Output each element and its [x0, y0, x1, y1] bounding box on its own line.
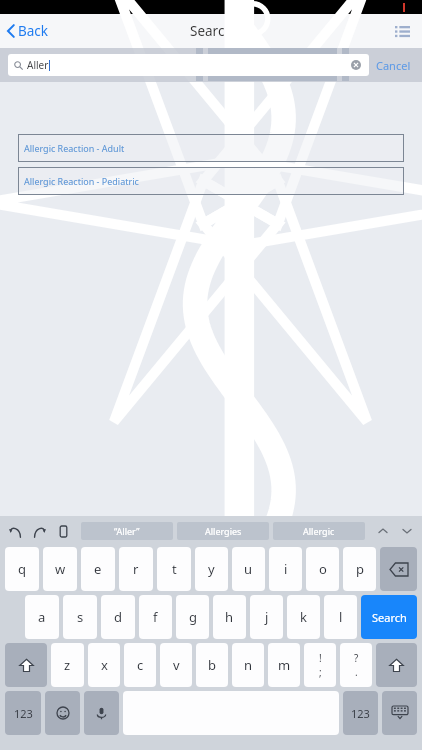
button[interactable]: Hide keyboard — [382, 691, 417, 735]
staticText: j — [265, 608, 269, 626]
button[interactable]: Next — [395, 519, 419, 543]
staticText: f — [153, 608, 158, 626]
button[interactable]: Numbers — [343, 691, 378, 735]
staticText: x — [101, 656, 108, 674]
staticText: . — [355, 665, 358, 679]
staticText: o — [319, 560, 327, 578]
button[interactable]: t — [157, 547, 191, 591]
button[interactable]: p — [343, 547, 376, 591]
button[interactable]: Redo — [27, 519, 51, 543]
staticText: z — [64, 656, 71, 674]
button[interactable]: b — [196, 643, 228, 687]
button[interactable]: o — [306, 547, 339, 591]
button[interactable]: “Aller” — [81, 522, 173, 540]
staticText: ! — [319, 651, 322, 665]
staticText: y — [208, 560, 215, 578]
staticText: l — [339, 608, 343, 626]
staticText: t — [172, 560, 177, 578]
button[interactable]: Clear text — [349, 58, 363, 72]
button[interactable]: ? — [340, 643, 372, 687]
staticText: q — [18, 560, 26, 578]
staticText: Back — [18, 22, 49, 40]
staticText: s — [77, 608, 84, 626]
button[interactable]: r — [119, 547, 153, 591]
staticText: Allergies — [205, 525, 242, 537]
button[interactable]: d — [101, 595, 135, 639]
button[interactable]: Shift — [376, 643, 417, 687]
staticText: w — [55, 560, 66, 578]
button[interactable]: Emoji — [45, 691, 80, 735]
staticText: Allergic Reaction - Pediatric — [24, 175, 139, 187]
button[interactable]: a — [25, 595, 59, 639]
button[interactable]: v — [160, 643, 192, 687]
button[interactable]: Dictation — [84, 691, 119, 735]
staticText: a — [38, 608, 46, 626]
button[interactable]: q — [5, 547, 39, 591]
button[interactable]: g — [176, 595, 209, 639]
button[interactable]: z — [51, 643, 84, 687]
staticText: u — [244, 560, 253, 578]
button[interactable]: Paste — [51, 519, 75, 543]
button[interactable]: Allergic — [273, 522, 365, 540]
staticText: v — [173, 656, 180, 674]
button[interactable]: n — [232, 643, 264, 687]
button[interactable]: Menu — [387, 16, 417, 46]
staticText: p — [356, 560, 364, 578]
button[interactable]: Numbers — [5, 691, 41, 735]
staticText: Allergic — [303, 525, 335, 537]
button[interactable]: Previous — [371, 519, 395, 543]
staticText: ? — [354, 651, 359, 665]
staticText: “Aller” — [114, 525, 140, 537]
button[interactable]: x — [88, 643, 120, 687]
button[interactable]: Cancel — [373, 53, 414, 78]
button[interactable]: j — [250, 595, 283, 639]
staticText: Aller — [27, 58, 49, 72]
staticText: Search — [190, 22, 233, 40]
button[interactable]: Back — [3, 17, 53, 45]
button[interactable]: w — [43, 547, 77, 591]
button[interactable]: Aller — [8, 54, 369, 76]
staticText: Search — [372, 610, 407, 625]
staticText: e — [94, 560, 102, 578]
button[interactable]: e — [81, 547, 115, 591]
button[interactable]: i — [269, 547, 302, 591]
button[interactable]: Shift — [5, 643, 47, 687]
button[interactable]: u — [232, 547, 265, 591]
button[interactable]: ! — [304, 643, 336, 687]
staticText: k — [300, 608, 307, 626]
button[interactable]: Allergic Reaction - Pediatric — [18, 167, 404, 195]
button[interactable]: k — [287, 595, 320, 639]
button[interactable]: Undo — [3, 519, 27, 543]
staticText: b — [208, 656, 216, 674]
staticText: c — [137, 656, 144, 674]
staticText: Allergic Reaction - Adult — [24, 142, 125, 154]
staticText: r — [133, 560, 139, 578]
staticText: 123 — [14, 706, 33, 721]
button[interactable]: f — [139, 595, 172, 639]
staticText: i — [284, 560, 288, 578]
staticText: h — [225, 608, 234, 626]
staticText: d — [114, 608, 122, 626]
staticText: ; — [319, 665, 322, 679]
staticText: Cancel — [376, 58, 411, 73]
staticText: g — [189, 608, 197, 626]
button[interactable]: s — [63, 595, 97, 639]
button[interactable]: Allergies — [177, 522, 269, 540]
button[interactable]: l — [324, 595, 357, 639]
staticText: m — [278, 656, 291, 674]
button[interactable]: Search — [361, 595, 417, 639]
staticText: 123 — [351, 706, 370, 721]
button[interactable]: h — [213, 595, 246, 639]
button[interactable]: m — [268, 643, 300, 687]
button[interactable]: Backspace — [380, 547, 417, 591]
button[interactable]: Allergic Reaction - Adult — [18, 134, 404, 162]
staticText: n — [244, 656, 253, 674]
button[interactable]: c — [124, 643, 156, 687]
button[interactable]: y — [195, 547, 228, 591]
